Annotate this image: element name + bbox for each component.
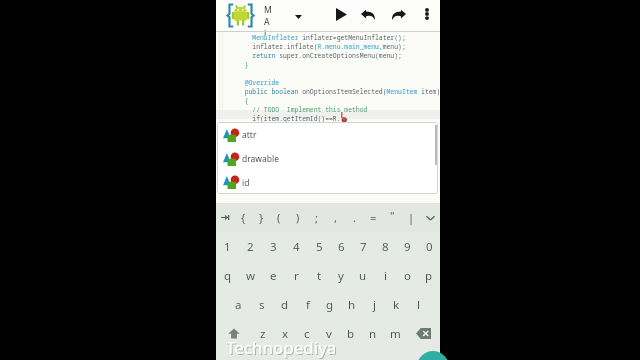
staticText: z bbox=[260, 326, 266, 342]
staticText: 4 bbox=[293, 239, 300, 255]
button[interactable]: , bbox=[326, 203, 345, 232]
staticText: i bbox=[264, 28, 267, 36]
button[interactable]: x bbox=[274, 319, 296, 348]
button[interactable]: 2 bbox=[239, 232, 262, 261]
button[interactable]: { bbox=[234, 203, 252, 232]
staticText: k bbox=[393, 297, 400, 313]
button[interactable]: . bbox=[345, 203, 364, 232]
staticText: w bbox=[246, 268, 256, 284]
button[interactable]: attr bbox=[217, 123, 438, 147]
staticText: 2 bbox=[247, 239, 254, 255]
button[interactable]: i bbox=[374, 261, 396, 290]
staticText: ) bbox=[296, 210, 300, 225]
button[interactable]: Redo bbox=[388, 3, 410, 25]
button[interactable]: w bbox=[239, 261, 262, 290]
button[interactable]: Run bbox=[330, 3, 352, 25]
button[interactable]: 3 bbox=[262, 232, 285, 261]
button[interactable]: g bbox=[319, 290, 341, 319]
button[interactable]: v bbox=[318, 319, 340, 348]
button[interactable]: | bbox=[402, 203, 421, 232]
button[interactable]: b bbox=[340, 319, 362, 348]
staticText: 5 bbox=[316, 239, 323, 255]
staticText: } bbox=[237, 60, 249, 69]
button[interactable]: z bbox=[251, 319, 274, 348]
button[interactable]: 0 bbox=[418, 232, 440, 261]
staticText: = bbox=[370, 210, 377, 225]
staticText: public boolean onOptionsItemSelected(Men… bbox=[237, 87, 440, 96]
button[interactable]: 8 bbox=[374, 232, 396, 261]
button[interactable]: More options bbox=[418, 3, 436, 25]
button[interactable]: Enter bbox=[401, 348, 440, 360]
button[interactable]: 7 bbox=[352, 232, 374, 261]
button[interactable]: s bbox=[250, 290, 273, 319]
button[interactable]: h bbox=[341, 290, 363, 319]
staticText: Technopediya bbox=[227, 337, 338, 360]
staticText: 7 bbox=[360, 239, 367, 255]
staticText: r bbox=[294, 268, 299, 284]
button[interactable]: = bbox=[364, 203, 383, 232]
button[interactable]: u bbox=[352, 261, 374, 290]
button[interactable]: Undo bbox=[357, 3, 379, 25]
staticText: { bbox=[241, 210, 246, 225]
staticText: a bbox=[235, 297, 242, 313]
button[interactable]: f bbox=[296, 290, 319, 319]
button[interactable]: l bbox=[407, 290, 429, 319]
button[interactable]: 4 bbox=[285, 232, 308, 261]
staticText: inflater.inflate(R.menu.main_menu,menu); bbox=[237, 42, 406, 51]
staticText: u bbox=[359, 268, 367, 284]
staticText: g bbox=[326, 297, 334, 313]
button[interactable] bbox=[421, 203, 440, 232]
button[interactable]: drawable bbox=[217, 147, 438, 171]
button[interactable]: Shift bbox=[216, 319, 251, 348]
button[interactable]: d bbox=[273, 290, 296, 319]
staticText: 9 bbox=[404, 239, 411, 255]
button[interactable]: a bbox=[227, 290, 250, 319]
button[interactable]: m bbox=[384, 319, 406, 348]
staticText: j bbox=[373, 297, 376, 313]
button[interactable]: k bbox=[385, 290, 407, 319]
button[interactable] bbox=[216, 203, 234, 232]
button[interactable]: " bbox=[383, 203, 402, 232]
button[interactable]: q bbox=[216, 261, 239, 290]
staticText: , bbox=[334, 210, 337, 225]
staticText: m bbox=[390, 326, 401, 342]
button[interactable]: Select file bbox=[288, 11, 308, 23]
button[interactable]: c bbox=[296, 319, 318, 348]
button[interactable]: n bbox=[362, 319, 384, 348]
staticText: @Override bbox=[237, 78, 280, 87]
staticText: d bbox=[281, 297, 289, 313]
button[interactable]: ) bbox=[288, 203, 307, 232]
button[interactable]: Backspace bbox=[406, 319, 440, 348]
staticText: } bbox=[259, 210, 264, 225]
button[interactable]: o bbox=[396, 261, 418, 290]
staticText: h bbox=[348, 297, 356, 313]
button[interactable]: id bbox=[217, 171, 438, 194]
button[interactable]: } bbox=[252, 203, 270, 232]
staticText: f bbox=[306, 297, 310, 313]
staticText: ; bbox=[315, 210, 318, 225]
staticText: b bbox=[347, 326, 355, 342]
staticText: o bbox=[404, 268, 411, 284]
button[interactable]: 6 bbox=[330, 232, 352, 261]
staticText: 3 bbox=[270, 239, 277, 255]
staticText: // TODO Implement this method bbox=[237, 105, 368, 114]
staticText: { bbox=[237, 96, 249, 105]
button[interactable]: ( bbox=[270, 203, 288, 232]
staticText: 1 bbox=[224, 239, 231, 255]
button[interactable]: p bbox=[418, 261, 440, 290]
staticText: M bbox=[264, 4, 272, 16]
staticText: if(item.getItemId()==R. bbox=[237, 114, 341, 122]
button[interactable]: ; bbox=[307, 203, 326, 232]
button[interactable]: j bbox=[363, 290, 385, 319]
button[interactable]: AIDE project bbox=[224, 2, 257, 28]
button[interactable]: 5 bbox=[308, 232, 330, 261]
staticText: Technopediya bbox=[226, 336, 337, 359]
button[interactable]: r bbox=[285, 261, 308, 290]
button[interactable]: 1 bbox=[216, 232, 239, 261]
button[interactable]: e bbox=[262, 261, 285, 290]
button[interactable]: 9 bbox=[396, 232, 418, 261]
button[interactable]: t bbox=[308, 261, 330, 290]
button[interactable]: y bbox=[330, 261, 352, 290]
staticText: p bbox=[425, 268, 433, 284]
button[interactable]: M bbox=[264, 4, 275, 36]
